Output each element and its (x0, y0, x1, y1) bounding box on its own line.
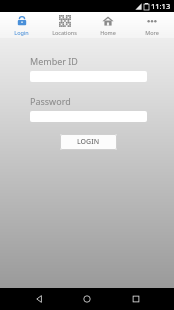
staticText: LOGIN (77, 137, 100, 147)
button[interactable]: LOGIN (60, 134, 117, 150)
staticText: More (145, 29, 159, 36)
button[interactable]: Locations (43, 12, 86, 38)
staticText: Home (100, 29, 116, 36)
button[interactable]: More (130, 12, 174, 38)
button[interactable]: Login (0, 12, 43, 38)
button[interactable]: Recent apps (126, 289, 146, 309)
staticText: Member ID (30, 55, 78, 67)
staticText: 11:13 (151, 1, 171, 11)
staticText: Password (30, 95, 71, 107)
staticText: Locations (52, 29, 77, 36)
staticText: Login (14, 29, 29, 36)
button[interactable]: Home (86, 12, 130, 38)
button[interactable]: Home (77, 289, 97, 309)
button[interactable]: Back (29, 289, 49, 309)
